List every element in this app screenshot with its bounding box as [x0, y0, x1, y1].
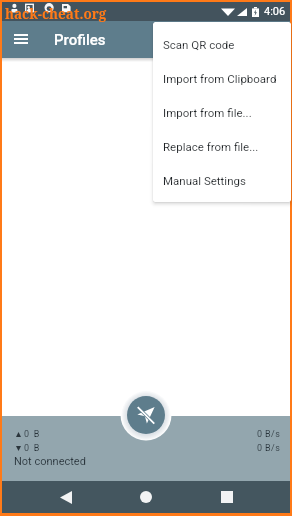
staticText: 0 B: [24, 429, 41, 440]
button[interactable]: Replace from file...: [153, 129, 291, 163]
button[interactable]: Home: [117, 481, 175, 513]
staticText: Scan QR code: [163, 38, 235, 51]
button[interactable]: Back: [37, 481, 95, 513]
staticText: Manual Settings: [163, 174, 246, 187]
staticText: Replace from file...: [163, 140, 259, 153]
staticText: 4:06: [264, 5, 286, 18]
button[interactable]: Import from Clipboard: [153, 61, 291, 95]
staticText: 0 B: [24, 443, 41, 454]
staticText: 0 B/s: [257, 443, 281, 454]
staticText: Not connected: [14, 455, 86, 468]
button[interactable]: Open navigation drawer: [2, 21, 39, 58]
button[interactable]: Recents: [198, 481, 256, 513]
staticText: 0 B/s: [257, 429, 281, 440]
button[interactable]: Scan QR code: [153, 27, 291, 61]
button[interactable]: Connect: [127, 396, 165, 434]
staticText: Profiles: [54, 31, 106, 49]
staticText: Import from Clipboard: [163, 72, 277, 85]
button[interactable]: Import from file...: [153, 95, 291, 129]
staticText: hack-cheat.org: [5, 5, 107, 23]
button[interactable]: Manual Settings: [153, 163, 291, 197]
staticText: Import from file...: [163, 106, 252, 119]
